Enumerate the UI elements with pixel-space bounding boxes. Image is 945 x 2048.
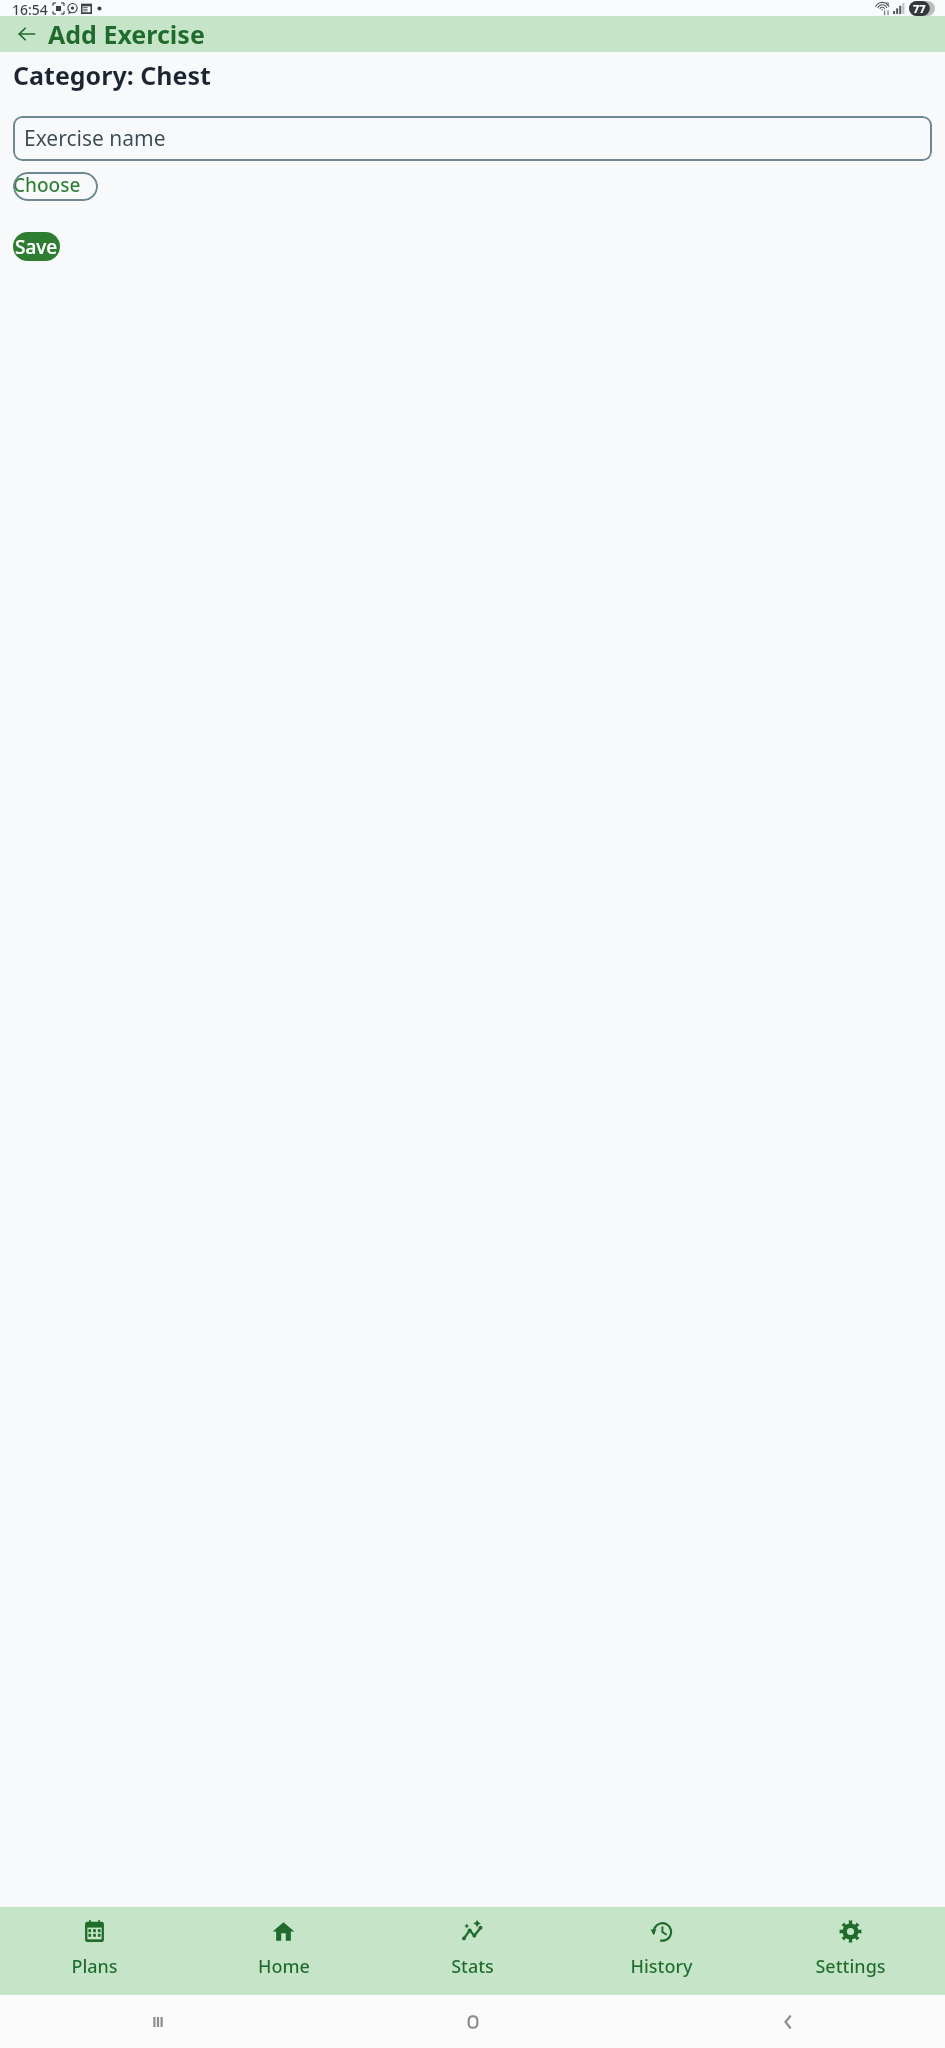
staticText: Stats xyxy=(451,1954,494,1979)
staticText: 16:54 xyxy=(12,0,48,16)
button[interactable]: Choose image xyxy=(13,172,98,201)
staticText: Plans xyxy=(71,1954,118,1979)
button[interactable]: Settings xyxy=(756,1907,945,1995)
staticText: History xyxy=(630,1954,693,1979)
staticText: Category: Chest xyxy=(13,58,211,92)
button[interactable]: Save xyxy=(13,232,60,261)
staticText: Exercise name xyxy=(24,124,166,153)
button[interactable]: Stats xyxy=(378,1907,567,1995)
staticText: Home xyxy=(258,1954,310,1979)
button[interactable]: Exercise name xyxy=(13,116,932,161)
button[interactable]: Home xyxy=(189,1907,378,1995)
staticText: 77 xyxy=(913,1,926,16)
button[interactable]: Plans xyxy=(0,1907,189,1995)
staticText: Save xyxy=(15,234,58,260)
staticText: Choose image xyxy=(13,172,98,201)
staticText: Add Exercise xyxy=(48,17,205,51)
staticText: Settings xyxy=(815,1954,886,1979)
button[interactable]: History xyxy=(567,1907,756,1995)
button[interactable]: Back xyxy=(14,21,40,47)
